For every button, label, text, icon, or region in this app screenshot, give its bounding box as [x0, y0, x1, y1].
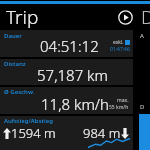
staticText: Aufstieg/Abstieg	[4, 117, 53, 125]
button[interactable]: Dauer	[0, 30, 133, 57]
staticText: 1594 m	[11, 124, 56, 142]
staticText: 01:47:46	[110, 46, 130, 53]
staticText: D	[140, 103, 145, 111]
staticText: 57,187 km	[37, 65, 108, 85]
staticText: exkl.	[113, 39, 124, 46]
staticText: Dauer	[4, 32, 22, 40]
staticText: 984 m	[83, 124, 121, 142]
staticText: 04:51:12	[40, 36, 99, 56]
staticText: Ø Geschw.	[4, 88, 35, 96]
button[interactable]: Ø Geschw.	[0, 87, 133, 114]
staticText: Trip	[6, 4, 39, 30]
staticText: Distanz	[4, 60, 26, 68]
staticText: 55 km/h	[109, 104, 129, 111]
staticText: D	[141, 4, 150, 30]
staticText: max.	[117, 97, 129, 104]
staticText: 11,8 km/h	[41, 94, 109, 114]
staticText: A	[140, 32, 144, 40]
button[interactable]: Start trip	[116, 8, 135, 27]
button[interactable]: Aufstieg/Abstieg	[0, 116, 133, 150]
button[interactable]: Distanz	[0, 59, 133, 85]
